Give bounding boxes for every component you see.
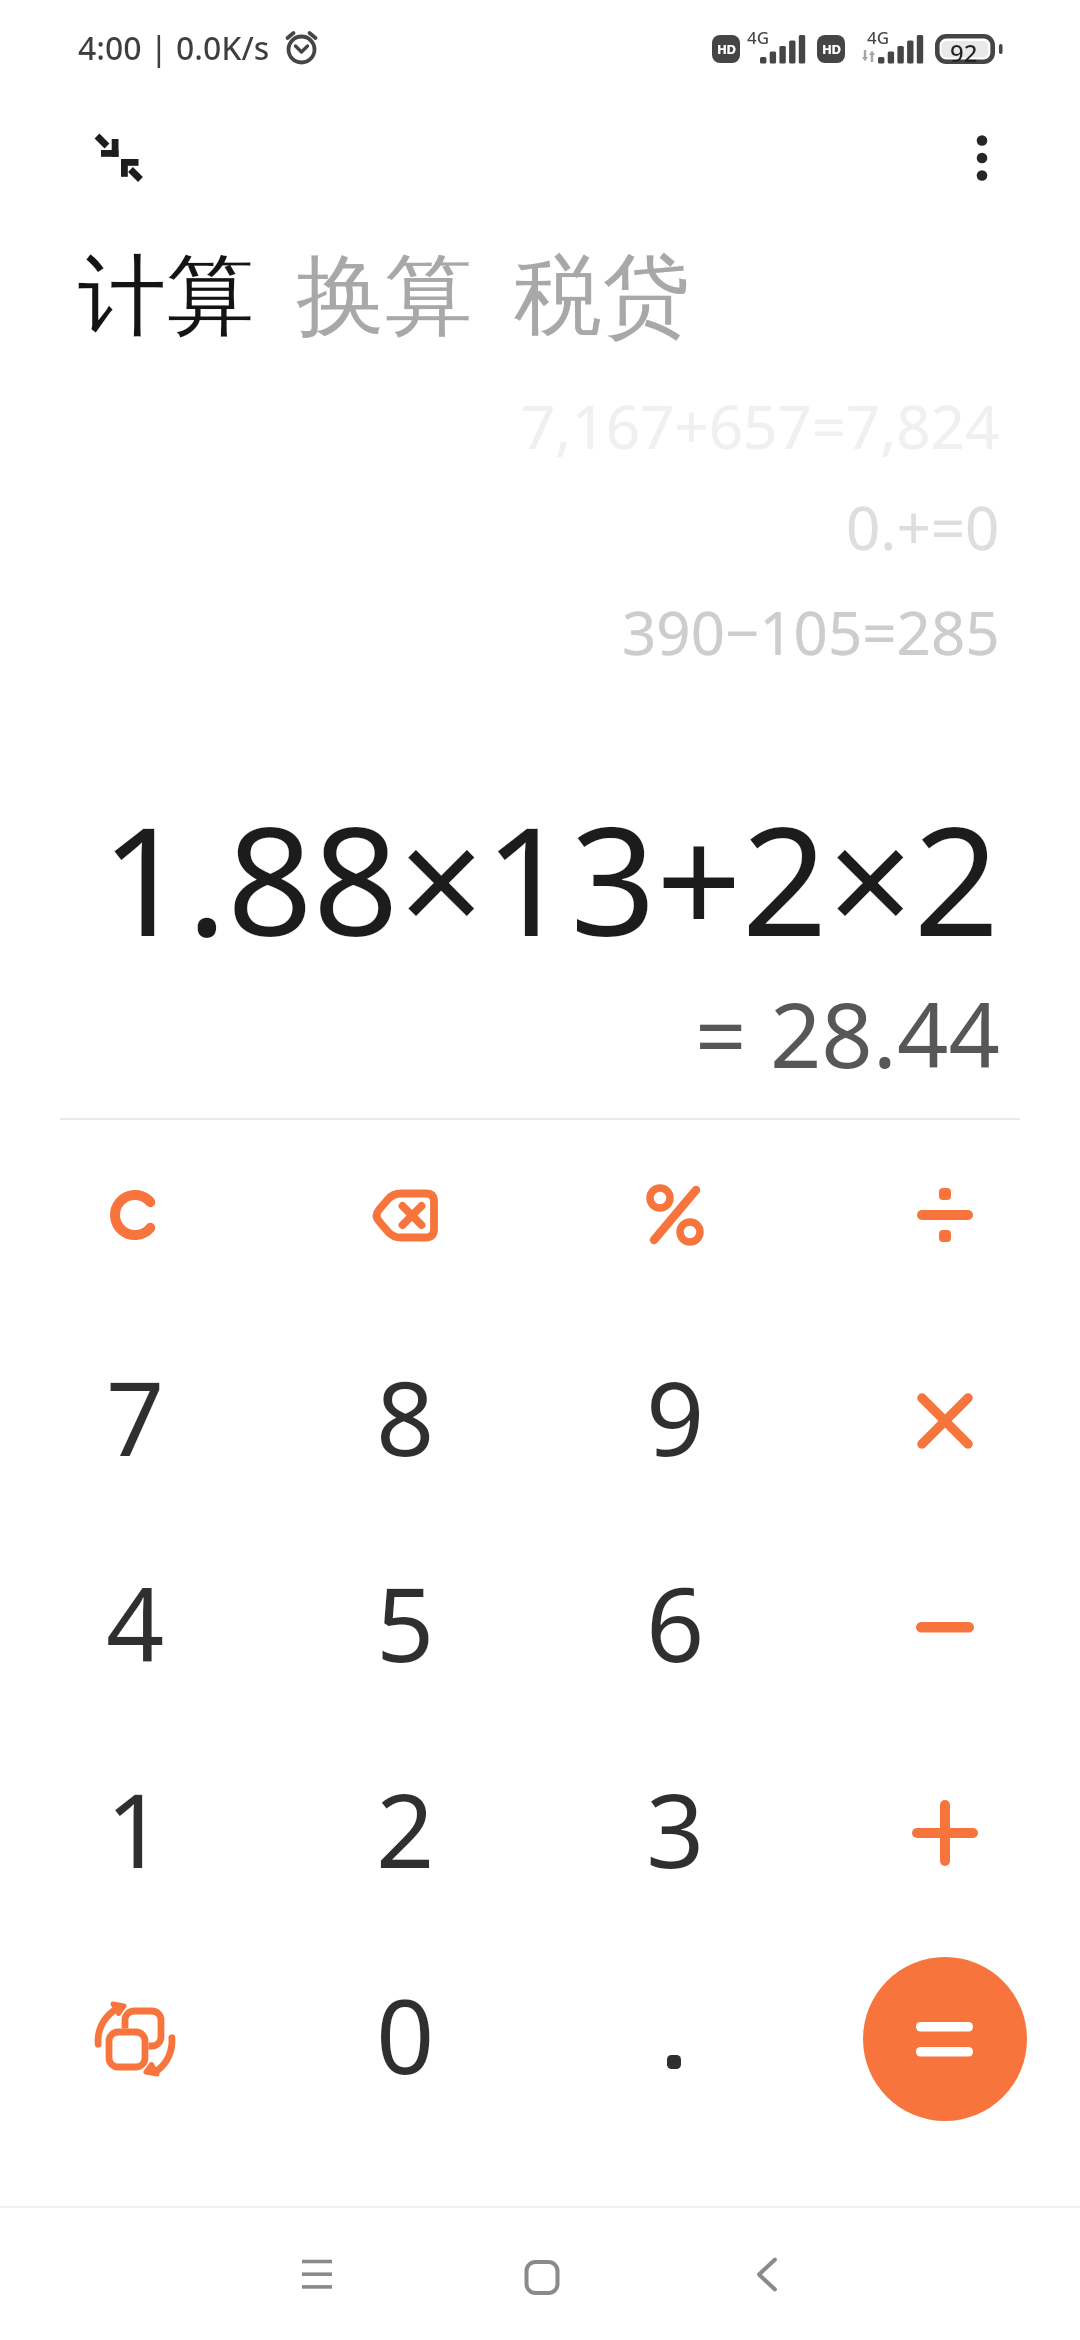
button[interactable]: 0 [270, 1936, 540, 2142]
button[interactable]: 6 [540, 1524, 810, 1730]
staticText: 9 [646, 1347, 705, 1486]
staticText: 4:00 | 0.0K/s [78, 26, 270, 70]
button[interactable]: 税贷 [514, 241, 690, 352]
button[interactable] [810, 1524, 1080, 1730]
staticText: 换算 [296, 241, 472, 352]
staticText: HD [717, 40, 736, 58]
staticText: 7 [106, 1347, 165, 1486]
staticText: 5 [376, 1553, 435, 1692]
button[interactable] [863, 1957, 1027, 2121]
button[interactable] [0, 1936, 270, 2142]
staticText: 2 [376, 1759, 435, 1898]
button[interactable]: 8 [270, 1318, 540, 1524]
button[interactable]: 9 [540, 1318, 810, 1524]
button[interactable] [0, 1112, 270, 1318]
staticText: = 28.44 [695, 972, 1000, 1092]
button[interactable] [810, 1730, 1080, 1936]
staticText: 税贷 [514, 241, 690, 352]
button[interactable] [810, 1112, 1080, 1318]
staticText: 92 [950, 36, 978, 63]
button[interactable] [518, 2253, 562, 2297]
staticText: 4 [106, 1553, 165, 1692]
button[interactable] [810, 1318, 1080, 1524]
staticText: 0 [376, 1965, 435, 2104]
staticText: 390−105=285 [622, 591, 1000, 671]
staticText: 计算 [78, 241, 254, 352]
button[interactable]: 计算 [78, 241, 254, 352]
button[interactable]: 5 [270, 1524, 540, 1730]
button[interactable] [88, 126, 150, 188]
staticText: 3 [646, 1759, 705, 1898]
staticText: 4G [867, 26, 890, 49]
button[interactable] [810, 1936, 1080, 2142]
staticText: 4G [747, 26, 770, 49]
button[interactable] [744, 2250, 790, 2300]
staticText: HD [822, 40, 841, 58]
button[interactable]: 3 [540, 1730, 810, 1936]
button[interactable]: 换算 [296, 241, 472, 352]
button[interactable]: 4 [0, 1524, 270, 1730]
staticText: 0.+=0 [846, 486, 1000, 566]
staticText: 7,167+657=7,824 [521, 385, 1000, 465]
staticText: 8 [376, 1347, 435, 1486]
button[interactable] [540, 1936, 810, 2142]
button[interactable] [540, 1112, 810, 1318]
button[interactable]: 7 [0, 1318, 270, 1524]
button[interactable] [965, 130, 999, 186]
button[interactable] [295, 2250, 339, 2300]
button[interactable]: 2 [270, 1730, 540, 1936]
button[interactable] [270, 1112, 540, 1318]
staticText: 1.88×13+2×2 [101, 776, 1000, 980]
staticText: 6 [646, 1553, 705, 1692]
button[interactable]: 1 [0, 1730, 270, 1936]
staticText: 1 [106, 1759, 165, 1898]
